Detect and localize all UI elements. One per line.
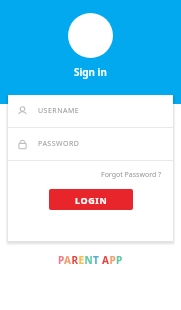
staticText: LOGIN — [75, 194, 108, 206]
staticText: PASSWORD — [38, 139, 80, 149]
staticText: Sign in — [74, 65, 107, 79]
button[interactable]: LOGIN — [49, 189, 133, 210]
staticText: USERNAME — [38, 106, 80, 116]
other: Password — [17, 139, 28, 150]
button[interactable]: Password — [8, 128, 173, 160]
button[interactable]: Username — [8, 95, 173, 127]
button[interactable]: Forgot Password ? — [98, 167, 165, 183]
other: Username — [17, 106, 28, 117]
other: Profile avatar — [68, 13, 113, 58]
staticText: PARENT APP — [58, 253, 123, 267]
staticText: Forgot Password ? — [101, 170, 162, 180]
